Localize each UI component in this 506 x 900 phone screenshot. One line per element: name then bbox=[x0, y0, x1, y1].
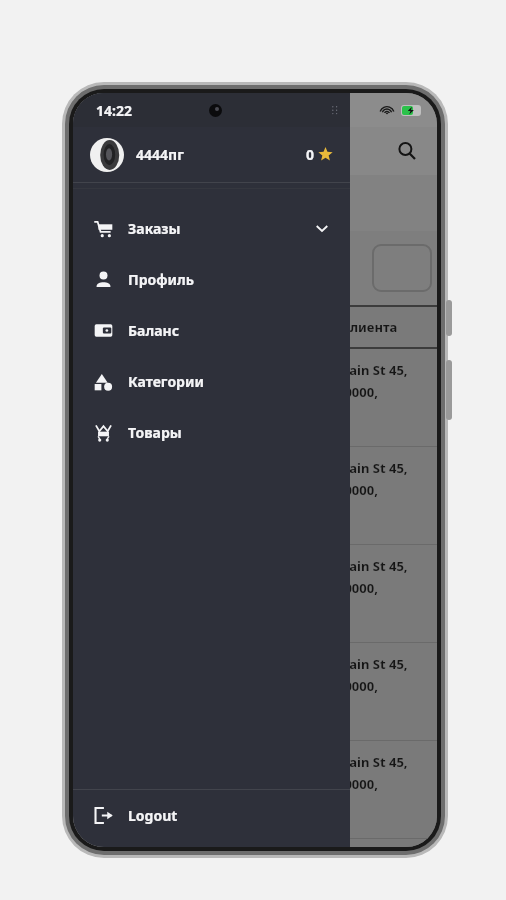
staticText: Категории bbox=[128, 372, 204, 391]
staticText: 10000, bbox=[337, 481, 378, 499]
staticText: 10000, bbox=[337, 677, 378, 695]
staticText: Main St 45, bbox=[337, 557, 408, 575]
staticText: 10000, bbox=[337, 383, 378, 401]
staticText: 4444пг bbox=[136, 145, 184, 164]
staticText: 14:22 bbox=[96, 101, 132, 120]
staticText: 0 bbox=[306, 145, 315, 164]
staticText: Клиента bbox=[341, 318, 398, 336]
staticText: 10000, bbox=[337, 775, 378, 793]
staticText: Баланс bbox=[128, 321, 180, 340]
other: Search bbox=[397, 141, 417, 161]
staticText: Main St 45, bbox=[337, 459, 408, 477]
staticText: Заказы bbox=[128, 219, 181, 238]
staticText: Профиль bbox=[128, 270, 195, 289]
staticText: Logout bbox=[128, 806, 178, 825]
staticText: Main St 45, bbox=[337, 655, 408, 673]
button[interactable]: Профиль bbox=[73, 264, 350, 294]
button[interactable]: Баланс bbox=[73, 315, 350, 345]
button[interactable]: Заказы bbox=[73, 213, 350, 243]
staticText: Main St 45, bbox=[337, 361, 408, 379]
button[interactable]: Товары bbox=[73, 417, 350, 447]
button[interactable]: Категории bbox=[73, 366, 350, 396]
staticText: Товары bbox=[128, 423, 182, 442]
staticText: Main St 45, bbox=[337, 753, 408, 771]
button[interactable]: 4444пг bbox=[73, 127, 350, 182]
staticText: 10000, bbox=[337, 579, 378, 597]
button[interactable]: Logout bbox=[73, 790, 350, 840]
